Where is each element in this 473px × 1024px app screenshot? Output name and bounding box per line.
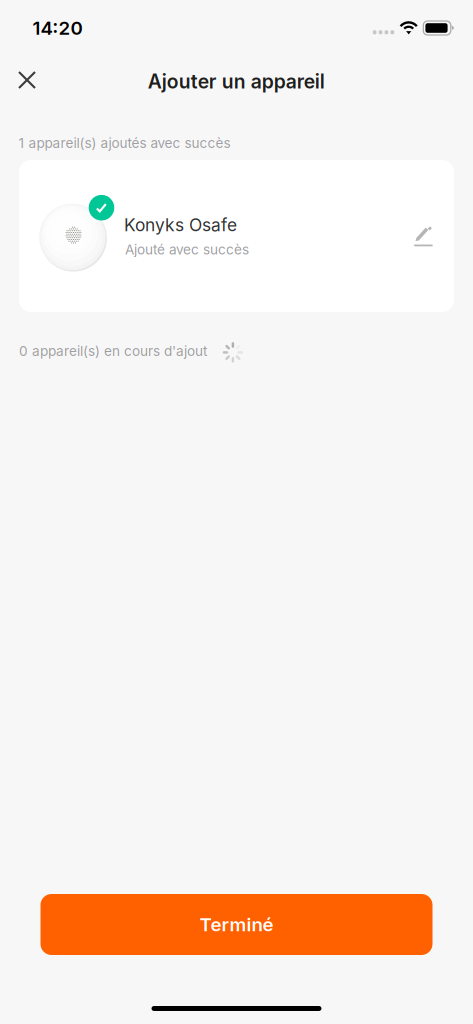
button[interactable]: Terminé bbox=[40, 894, 432, 955]
staticText: Konyks Osafe bbox=[124, 214, 237, 235]
staticText: 0 appareil(s) en cours d'ajout bbox=[19, 343, 207, 359]
button[interactable]: Fermer bbox=[4, 57, 50, 103]
staticText: 14:20 bbox=[32, 17, 82, 39]
staticText: Ajouté avec succès bbox=[125, 241, 249, 258]
button[interactable]: Renommer l'appareil bbox=[400, 213, 446, 259]
staticText: 1 appareil(s) ajoutés avec succès bbox=[18, 135, 230, 151]
staticText: Terminé bbox=[199, 913, 273, 936]
staticText: Ajouter un appareil bbox=[148, 70, 325, 93]
